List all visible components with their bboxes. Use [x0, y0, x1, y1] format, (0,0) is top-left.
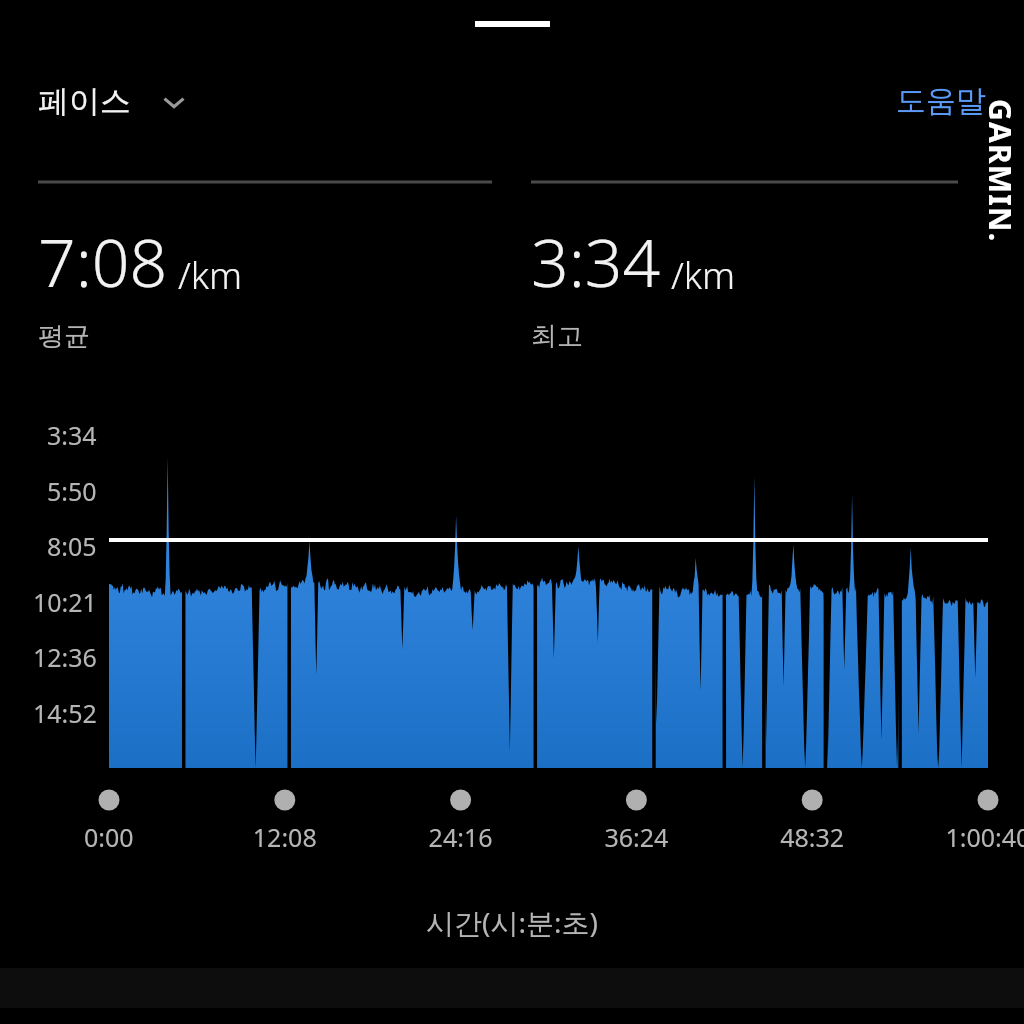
- button[interactable]: 도움말: [892, 78, 990, 124]
- staticText: 시간(시:분:초): [426, 903, 598, 941]
- staticText: 7:08: [38, 216, 168, 306]
- staticText: 페이스: [38, 82, 131, 121]
- staticText: 도움말: [896, 82, 986, 120]
- staticText: 3:34: [531, 216, 661, 306]
- staticText: 평균: [38, 320, 90, 353]
- button[interactable]: 페이스: [38, 82, 191, 121]
- button[interactable]: Pace chart: [0, 0, 1024, 1024]
- staticText: /km: [671, 249, 736, 299]
- staticText: /km: [178, 249, 243, 299]
- other: Garmin: [978, 56, 1022, 286]
- staticText: 최고: [531, 320, 583, 353]
